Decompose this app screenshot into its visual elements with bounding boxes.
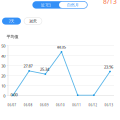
staticText: 8/13 xyxy=(103,0,117,6)
staticText: 44.05 xyxy=(57,44,66,50)
staticText: 30 xyxy=(1,63,5,69)
staticText: 25.34 xyxy=(40,67,49,72)
staticText: 0 xyxy=(3,93,5,99)
staticText: 30天 xyxy=(29,18,37,24)
button[interactable]: 7天 xyxy=(2,18,21,25)
staticText: 06/07 xyxy=(8,103,17,107)
staticText: 06/08 xyxy=(24,103,33,107)
staticText: 近7日 xyxy=(41,2,51,7)
staticText: 40 xyxy=(1,53,5,59)
staticText: 10 xyxy=(1,83,5,89)
staticText: 23.96 xyxy=(104,64,113,70)
staticText: 06/09 xyxy=(40,103,49,107)
staticText: 06/11 xyxy=(72,103,81,107)
staticText: 7天 xyxy=(8,18,14,24)
staticText: 0.00 xyxy=(11,92,18,97)
staticText: 平均值 xyxy=(6,34,18,39)
staticText: 50 xyxy=(1,43,5,49)
button[interactable]: 30天 xyxy=(24,18,42,25)
staticText: 06/10 xyxy=(56,103,65,107)
button[interactable]: 近7日 xyxy=(32,1,88,9)
staticText: 27.87 xyxy=(23,63,32,69)
staticText: 06/12 xyxy=(88,103,97,107)
staticText: 06/13 xyxy=(105,103,114,107)
staticText: 自然月 xyxy=(67,2,79,7)
staticText: 20 xyxy=(1,73,5,79)
